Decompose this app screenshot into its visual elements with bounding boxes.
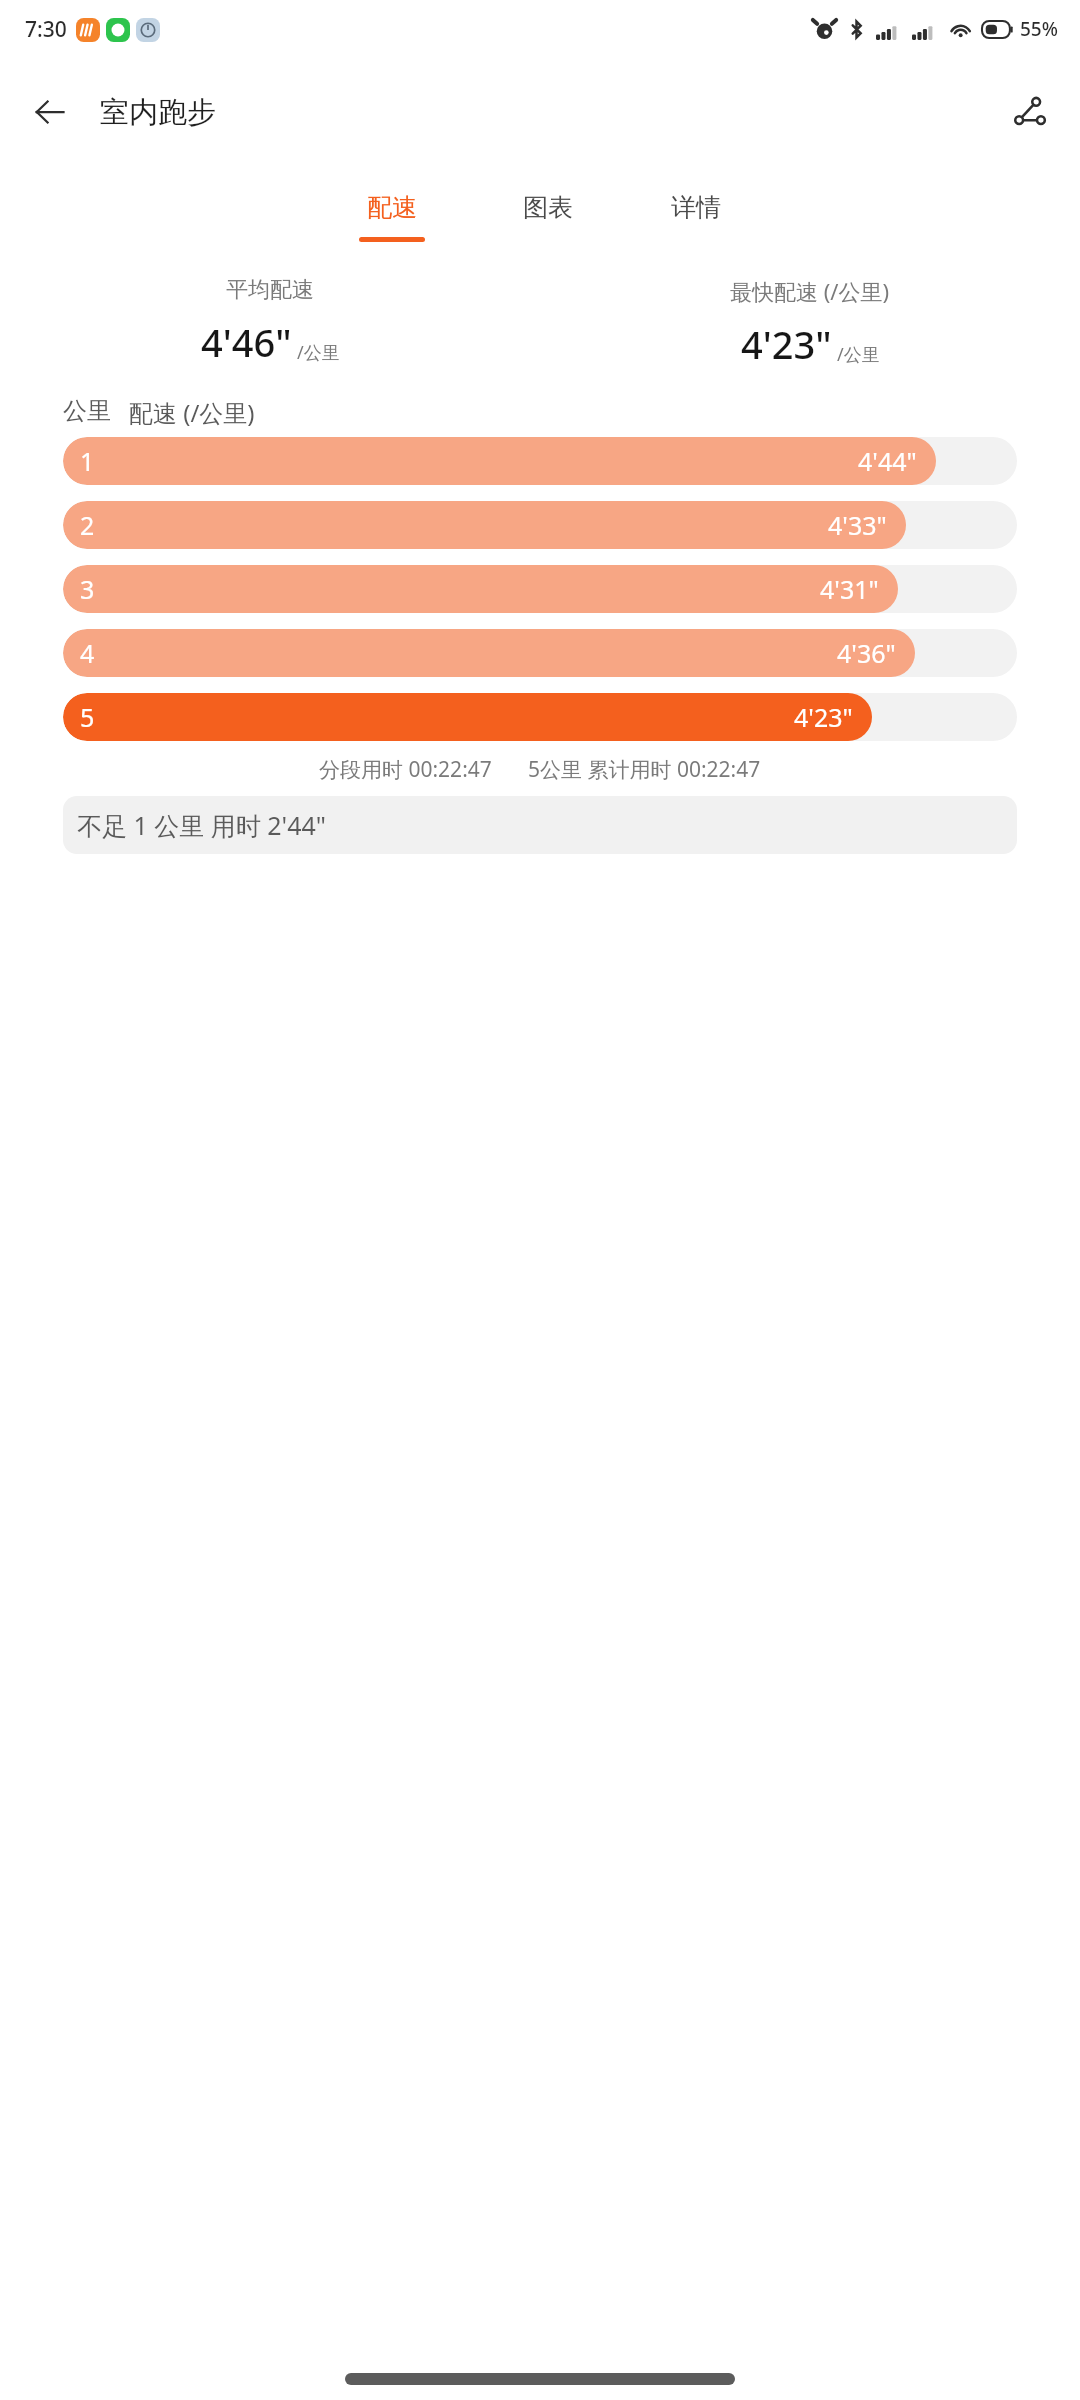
staticText: 详情 [671,192,721,223]
staticText: /公里 [837,342,880,367]
staticText: /公里 [297,340,340,365]
staticText: 7:30 [25,15,67,44]
staticText: 4'23" [741,318,832,370]
staticText: 配速 [367,192,417,223]
button[interactable]: 详情 [661,188,731,246]
button[interactable]: 不足 1 公里 用时 2'44" [63,796,1017,854]
button[interactable]: 图表 [513,188,583,246]
button[interactable]: Share [1000,84,1056,140]
staticText: 室内跑步 [100,94,216,131]
staticText: 平均配速 [226,276,314,304]
staticText: 4'33" [828,508,887,542]
staticText: 5公里 累计用时 00:22:47 [528,755,761,784]
staticText: 1 [80,444,95,478]
button[interactable]: 2 [63,501,1017,549]
staticText: 4'46" [201,316,292,368]
staticText: 配速 (/公里) [129,396,255,429]
button[interactable]: Back [22,84,78,140]
button[interactable]: 4 [63,629,1017,677]
staticText: 图表 [523,192,573,223]
button[interactable]: 配速 [349,188,435,246]
button[interactable]: 3 [63,565,1017,613]
staticText: 2 [80,508,95,542]
staticText: 3 [80,572,95,606]
staticText: 公里 [63,396,111,426]
staticText: 4'36" [837,636,896,670]
staticText: 4 [80,636,95,670]
staticText: 4'23" [794,700,853,734]
staticText: 55% [1020,16,1058,42]
staticText: 4'31" [820,572,879,606]
button[interactable]: 5 [63,693,1017,741]
staticText: 分段用时 00:22:47 [319,755,492,784]
staticText: 5 [80,700,95,734]
staticText: 最快配速 (/公里) [730,276,890,306]
staticText: 4'44" [858,444,917,478]
button[interactable]: 1 [63,437,1017,485]
staticText: 不足 1 公里 用时 2'44" [77,808,327,842]
